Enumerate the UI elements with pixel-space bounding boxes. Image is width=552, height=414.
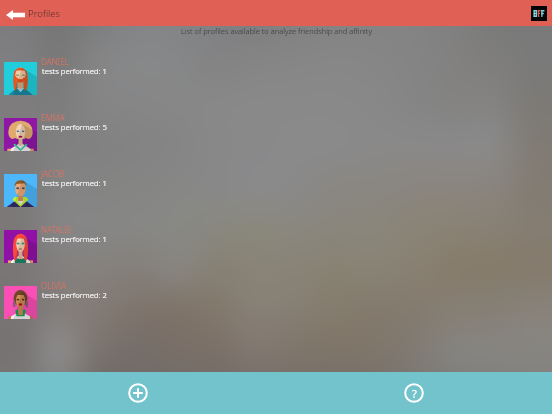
staticText: ? (412, 386, 417, 401)
staticText: EMMA (41, 112, 65, 123)
button[interactable]: BFF (531, 6, 547, 21)
button[interactable]: JACOB (0, 162, 552, 218)
staticText: NATALIE (41, 224, 72, 235)
button[interactable]: EMMA (0, 106, 552, 162)
button[interactable]: OLIVIA (0, 274, 552, 330)
button[interactable]: NATALIE (0, 218, 552, 274)
staticText: OLIVIA (41, 280, 67, 291)
staticText: tests performed: 1 (42, 234, 107, 245)
staticText: JACOB (41, 168, 65, 179)
button[interactable]: Back (0, 0, 27, 26)
staticText: Profiles (28, 7, 61, 20)
staticText: tests performed: 2 (42, 290, 107, 301)
button[interactable]: Add profile (0, 372, 276, 414)
staticText: List of profiles available to analyze fr… (181, 26, 372, 36)
staticText: tests performed: 5 (42, 122, 107, 133)
staticText: tests performed: 1 (42, 178, 107, 189)
staticText: tests performed: 1 (42, 66, 107, 77)
staticText: DANIEL (41, 56, 69, 67)
button[interactable]: DANIEL (0, 50, 552, 106)
button[interactable]: Help (276, 372, 552, 414)
